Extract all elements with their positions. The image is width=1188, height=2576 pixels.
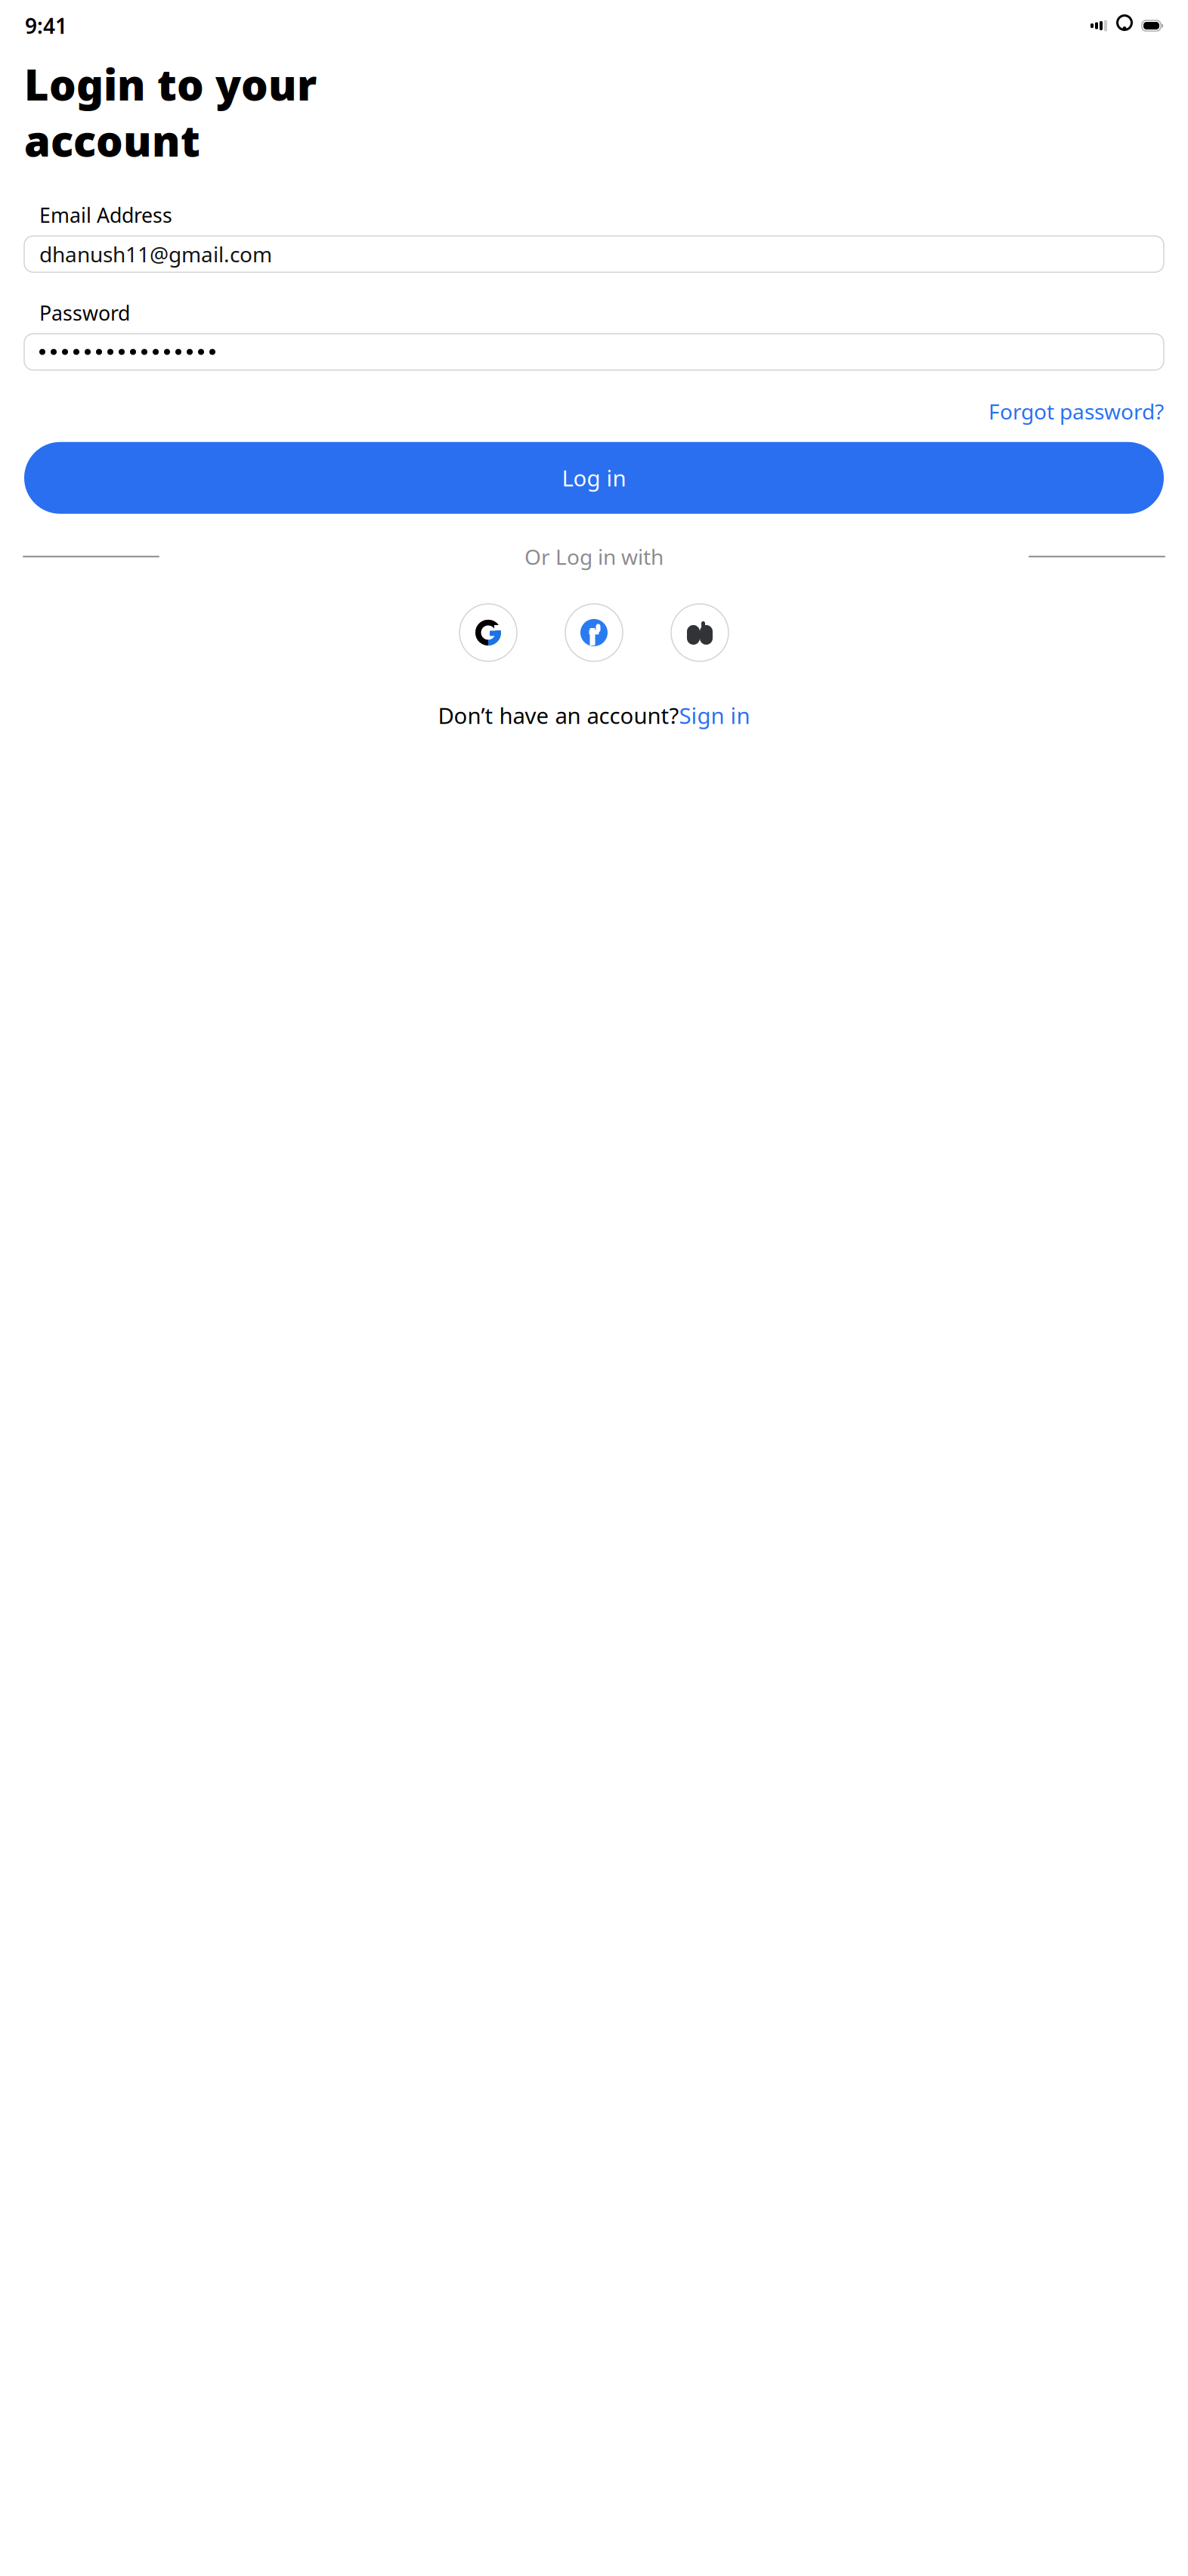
staticText: Password: [39, 299, 130, 326]
button[interactable]: Log in with Google: [459, 604, 517, 661]
staticText: 9:41: [25, 12, 67, 40]
button[interactable]: Log in: [24, 442, 1164, 514]
staticText: Log in: [562, 463, 626, 493]
staticText: Forgot password?: [988, 397, 1164, 425]
staticText: dhanush11@gmail.com: [39, 240, 272, 268]
button[interactable]: Sign in: [679, 701, 750, 730]
staticText: Login to your account: [24, 56, 317, 168]
staticText: Don’t have an account?: [438, 701, 679, 730]
button[interactable]: Log in with Apple: [671, 604, 729, 661]
button[interactable]: Forgot password?: [988, 397, 1164, 425]
button[interactable]: Log in with Facebook: [565, 604, 623, 661]
staticText: Sign in: [679, 701, 750, 730]
staticText: Or Log in with: [524, 542, 664, 571]
staticText: Email Address: [39, 202, 172, 228]
